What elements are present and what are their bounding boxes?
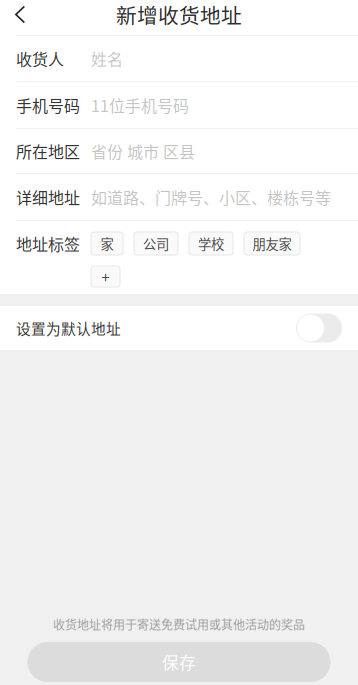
- button[interactable]: 保存: [27, 642, 330, 682]
- button[interactable]: 朋友家: [244, 232, 300, 255]
- staticText: 姓名: [91, 47, 123, 70]
- staticText: 地址标签: [16, 232, 80, 255]
- button[interactable]: Back: [0, 0, 40, 29]
- staticText: 详细地址: [16, 185, 80, 209]
- staticText: 如道路、门牌号、小区、楼栋号等: [91, 185, 331, 209]
- staticText: 设置为默认地址: [16, 317, 121, 339]
- staticText: 朋友家: [252, 234, 291, 253]
- staticText: +: [101, 266, 109, 287]
- staticText: 11位手机号码: [91, 93, 189, 117]
- button[interactable]: 公司: [134, 232, 178, 255]
- button[interactable]: 所在地区: [0, 129, 358, 173]
- staticText: 家: [100, 234, 113, 253]
- button[interactable]: 学校: [189, 232, 233, 255]
- staticText: 收货人: [16, 47, 64, 70]
- button[interactable]: 手机号码: [0, 82, 358, 128]
- staticText: 学校: [198, 234, 224, 253]
- button[interactable]: 详细地址: [0, 174, 358, 220]
- button[interactable]: 收货人: [0, 36, 358, 81]
- button[interactable]: Set as default address: [296, 313, 342, 342]
- button[interactable]: Add tag: [91, 266, 120, 287]
- staticText: 省份 城市 区县: [91, 139, 195, 163]
- button[interactable]: 家: [91, 232, 123, 255]
- staticText: 收货地址将用于寄送免费试用或其他活动的奖品: [53, 616, 305, 633]
- staticText: 所在地区: [16, 139, 80, 163]
- staticText: 保存: [162, 650, 196, 674]
- staticText: 公司: [143, 234, 169, 253]
- staticText: 手机号码: [16, 93, 80, 117]
- staticText: 新增收货地址: [116, 0, 242, 29]
